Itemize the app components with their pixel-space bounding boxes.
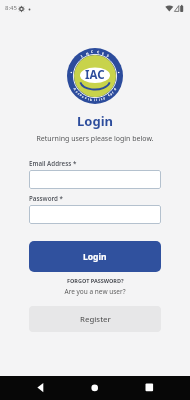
button[interactable]: Login bbox=[29, 241, 161, 272]
staticText: a bbox=[109, 92, 113, 96]
button[interactable] bbox=[80, 376, 110, 400]
staticText: b bbox=[90, 98, 92, 102]
staticText: FORGOT PASSWORD? bbox=[67, 277, 124, 284]
button[interactable] bbox=[29, 170, 161, 189]
staticText: c bbox=[75, 90, 79, 94]
staticText: 8:45 bbox=[5, 4, 17, 12]
staticText: Password * bbox=[29, 194, 63, 202]
staticText: I bbox=[80, 54, 84, 58]
button[interactable] bbox=[29, 205, 161, 224]
staticText: d bbox=[113, 87, 117, 91]
staticText: C bbox=[107, 93, 111, 97]
staticText: i bbox=[99, 98, 100, 102]
staticText: s bbox=[84, 96, 88, 100]
staticText: E bbox=[101, 52, 105, 56]
staticText: i bbox=[94, 98, 95, 102]
button[interactable] bbox=[134, 376, 164, 400]
button[interactable] bbox=[26, 376, 56, 400]
staticText: i bbox=[87, 97, 89, 101]
staticText: y bbox=[102, 96, 106, 100]
staticText: Login bbox=[83, 251, 107, 263]
button[interactable]: Register bbox=[29, 306, 161, 332]
button[interactable]: FORGOT PASSWORD? bbox=[0, 277, 190, 284]
staticText: C bbox=[97, 50, 99, 54]
staticText: c bbox=[77, 92, 81, 96]
staticText: Email Address * bbox=[29, 159, 77, 167]
staticText: e bbox=[79, 93, 83, 97]
staticText: l bbox=[96, 98, 97, 102]
staticText: r bbox=[111, 90, 115, 94]
staticText: IAC bbox=[85, 67, 105, 83]
staticText: Returning users please login below. bbox=[0, 134, 190, 144]
staticText: t bbox=[100, 97, 104, 101]
staticText: A bbox=[73, 87, 77, 91]
staticText: S bbox=[106, 54, 110, 58]
staticText: Login bbox=[0, 112, 190, 130]
staticText: Register bbox=[80, 314, 111, 325]
staticText: Are you a new user? bbox=[0, 287, 190, 296]
staticText: N bbox=[85, 51, 89, 56]
staticText: C bbox=[91, 50, 93, 54]
staticText: s bbox=[81, 95, 85, 99]
